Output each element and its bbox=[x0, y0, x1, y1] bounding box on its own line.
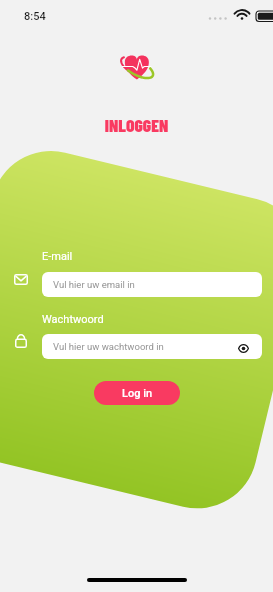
staticText: Vul hier uw wachtwoord in bbox=[53, 341, 164, 352]
staticText: INLOGGEN bbox=[0, 114, 273, 135]
staticText: 8:54 bbox=[24, 10, 46, 23]
button[interactable]: Log in bbox=[94, 381, 180, 405]
staticText: Log in bbox=[122, 387, 153, 400]
staticText: Vul hier uw email in bbox=[53, 279, 135, 290]
button[interactable]: Vul hier uw email in bbox=[42, 272, 262, 297]
button[interactable]: Show password bbox=[231, 336, 255, 359]
button[interactable]: Vul hier uw wachtwoord in bbox=[42, 334, 262, 359]
staticText: Wachtwoord bbox=[42, 313, 104, 326]
staticText: E-mail bbox=[42, 250, 73, 263]
